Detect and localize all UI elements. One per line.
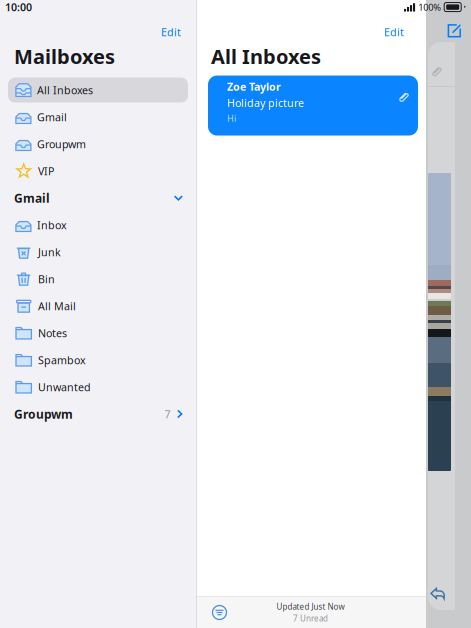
staticText: Spambox bbox=[38, 353, 86, 367]
staticText: Groupwm bbox=[37, 137, 86, 151]
button[interactable]: Edit bbox=[155, 22, 187, 42]
button[interactable]: Bin bbox=[0, 266, 196, 293]
staticText: All Inboxes bbox=[211, 43, 321, 70]
staticText: Mailboxes bbox=[14, 43, 115, 70]
staticText: Hi bbox=[227, 112, 236, 124]
button[interactable]: Junk bbox=[0, 239, 196, 266]
button[interactable]: Compose bbox=[443, 19, 466, 42]
staticText: Zoe Taylor bbox=[227, 80, 281, 94]
button[interactable]: Reply bbox=[426, 585, 446, 602]
staticText: Bin bbox=[38, 272, 55, 286]
staticText: 7 Unread bbox=[293, 613, 328, 624]
staticText: Gmail bbox=[37, 110, 67, 124]
staticText: Groupwm bbox=[14, 406, 73, 422]
staticText: 10:00 bbox=[5, 0, 32, 14]
button[interactable]: VIP bbox=[0, 158, 196, 185]
button[interactable]: All Mail bbox=[0, 293, 196, 320]
button[interactable]: Filter bbox=[207, 600, 232, 625]
button[interactable]: Gmail bbox=[0, 185, 196, 212]
staticText: 7 bbox=[164, 407, 170, 421]
staticText: Unwanted bbox=[38, 380, 91, 394]
button[interactable]: Groupwm bbox=[0, 401, 196, 428]
staticText: Holiday picture bbox=[227, 96, 304, 110]
button[interactable]: Groupwm bbox=[0, 131, 196, 158]
button[interactable]: Zoe Taylor bbox=[197, 76, 426, 136]
staticText: All Inboxes bbox=[37, 83, 93, 97]
staticText: Edit bbox=[384, 25, 404, 39]
staticText: All Mail bbox=[38, 299, 76, 313]
button[interactable]: Edit bbox=[378, 22, 410, 42]
staticText: Inbox bbox=[37, 218, 67, 232]
staticText: Junk bbox=[38, 245, 61, 259]
staticText: VIP bbox=[38, 164, 54, 178]
button[interactable]: Notes bbox=[0, 320, 196, 347]
button[interactable]: Unwanted bbox=[0, 374, 196, 401]
button[interactable]: Gmail bbox=[0, 104, 196, 131]
staticText: Gmail bbox=[14, 190, 50, 206]
staticText: Edit bbox=[161, 25, 181, 39]
staticText: Notes bbox=[38, 326, 67, 340]
staticText: 100% bbox=[418, 1, 441, 13]
staticText: Updated Just Now bbox=[276, 601, 344, 612]
button[interactable]: Spambox bbox=[0, 347, 196, 374]
button[interactable]: Inbox bbox=[0, 212, 196, 239]
button[interactable]: All Inboxes bbox=[0, 77, 196, 104]
